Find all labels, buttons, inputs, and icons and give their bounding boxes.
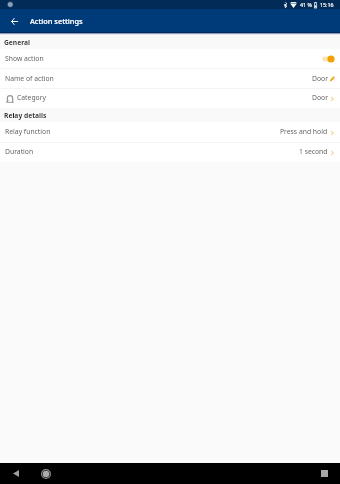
button[interactable]: Show action: [0, 49, 340, 69]
staticText: Relay function: [5, 127, 51, 136]
button[interactable]: Home: [38, 466, 53, 481]
button[interactable]: Recent apps: [317, 466, 332, 481]
staticText: Relay details: [4, 111, 47, 120]
button[interactable]: Duration: [0, 143, 340, 162]
staticText: 1 second: [299, 147, 328, 156]
button[interactable]: Category: [0, 89, 340, 108]
staticText: Press and hold: [280, 127, 328, 136]
button[interactable]: Relay function: [0, 122, 340, 143]
staticText: Name of action: [5, 74, 54, 83]
staticText: Show action: [5, 54, 44, 63]
staticText: Duration: [5, 147, 34, 156]
staticText: 15:16: [320, 1, 334, 8]
button[interactable]: Navigate up: [4, 11, 24, 31]
staticText: General: [4, 38, 31, 47]
staticText: Door: [312, 93, 328, 102]
staticText: Category: [17, 93, 46, 102]
button[interactable]: Name of action: [0, 69, 340, 89]
staticText: 41 %: [300, 1, 312, 8]
staticText: Action settings: [30, 16, 83, 26]
button[interactable]: Back: [8, 466, 23, 481]
staticText: Door: [312, 74, 328, 83]
